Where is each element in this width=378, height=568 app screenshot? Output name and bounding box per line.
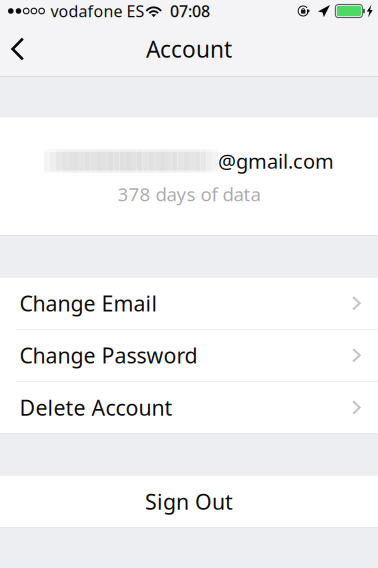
staticText: 378 days of data bbox=[117, 181, 260, 206]
button[interactable]: Delete Account bbox=[0, 381, 378, 433]
staticText: Account bbox=[146, 34, 232, 64]
staticText: Change Email bbox=[19, 289, 157, 317]
button[interactable]: Back bbox=[0, 22, 46, 76]
staticText: Sign Out bbox=[145, 487, 233, 516]
button[interactable]: Change Email bbox=[0, 277, 378, 329]
staticText: 07:08 bbox=[170, 0, 210, 22]
staticText: vodafone ES bbox=[50, 0, 144, 22]
staticText: Change Password bbox=[19, 341, 197, 369]
button[interactable]: Change Password bbox=[0, 329, 378, 381]
staticText: Delete Account bbox=[19, 393, 172, 422]
button[interactable]: Sign Out bbox=[0, 475, 378, 527]
staticText: @gmail.com bbox=[218, 148, 334, 174]
